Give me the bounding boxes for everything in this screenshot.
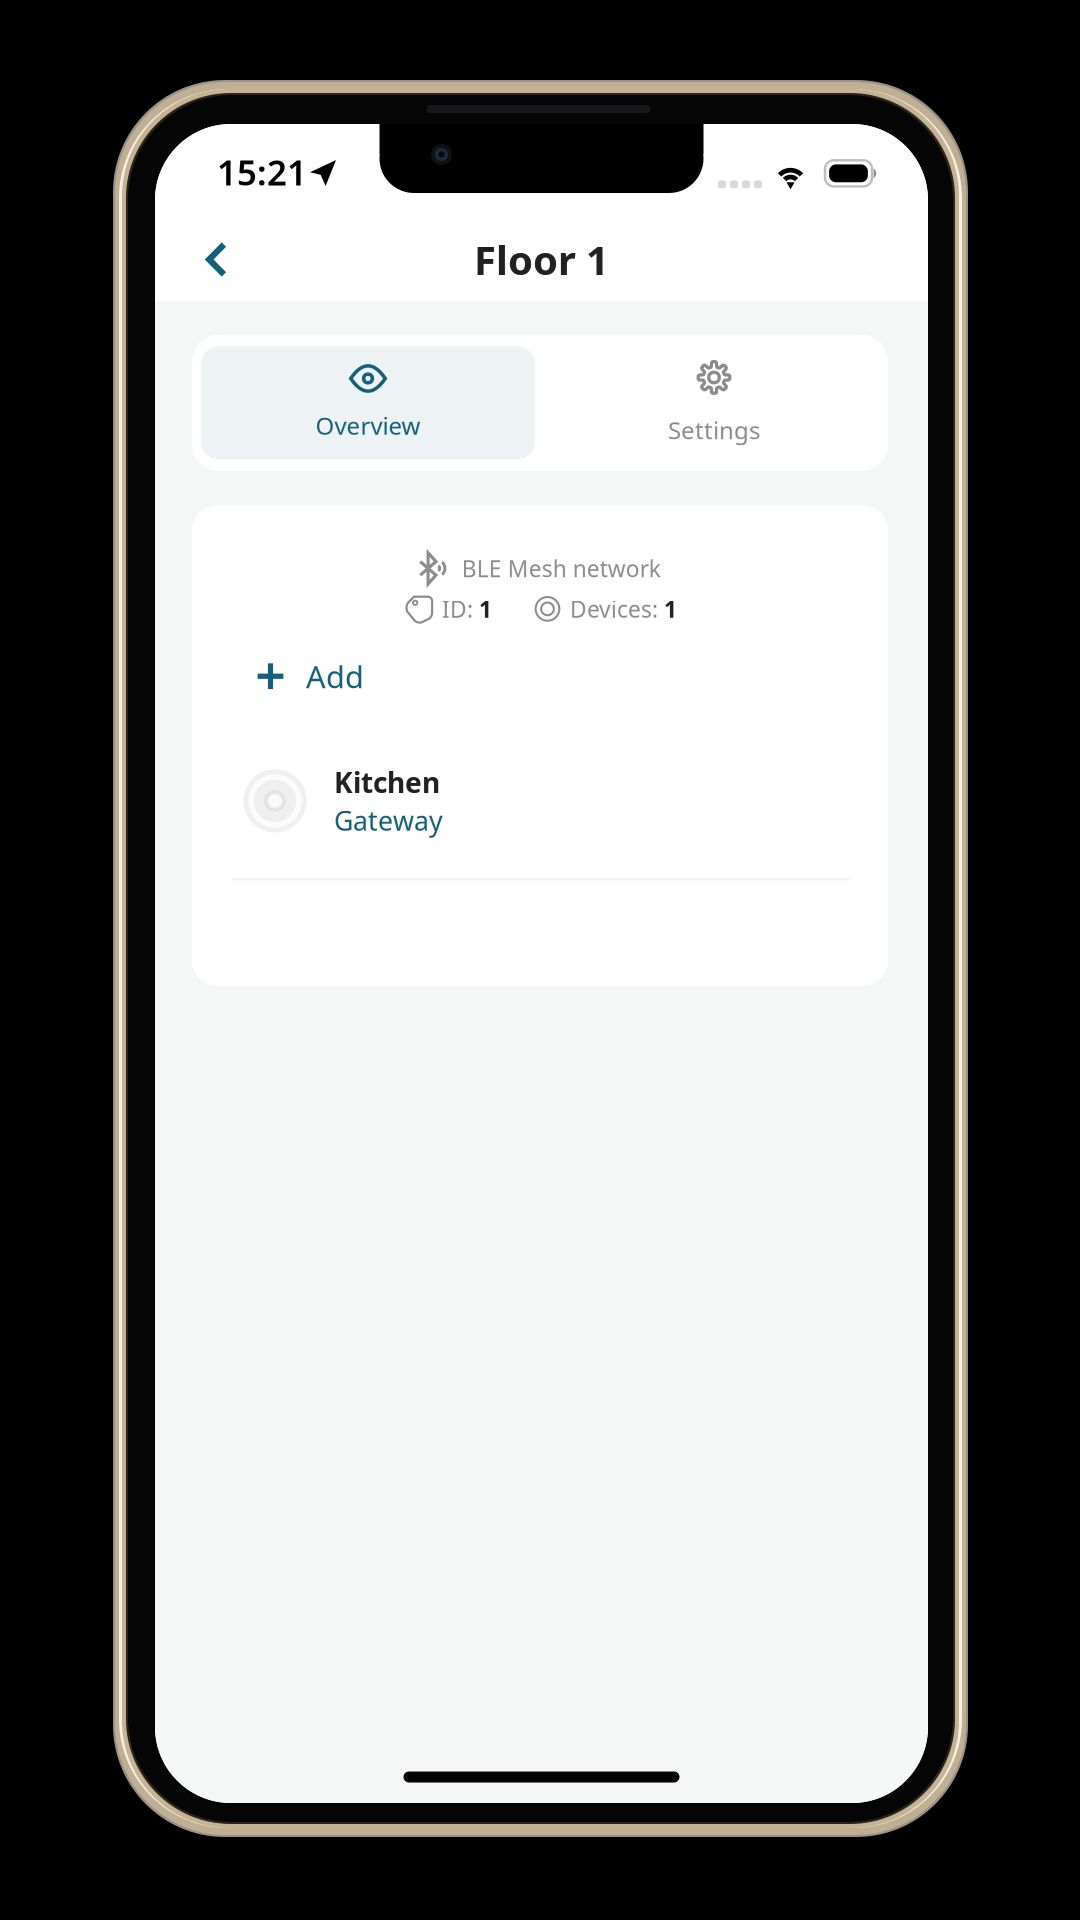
button[interactable]: Overview: [201, 346, 535, 459]
staticText: Overview: [315, 410, 420, 441]
staticText: 1: [664, 594, 677, 624]
staticText: BLE Mesh network: [462, 553, 661, 583]
staticText: 15:21: [217, 149, 307, 195]
button[interactable]: Settings: [547, 342, 881, 464]
staticText: ID:: [442, 594, 479, 624]
staticText: Devices:: [570, 594, 664, 624]
staticText: 1: [479, 594, 492, 624]
staticText: Settings: [668, 414, 760, 446]
staticText: Floor 1: [474, 233, 609, 286]
button[interactable]: Back: [155, 220, 257, 298]
staticText: Kitchen: [334, 764, 440, 801]
button[interactable]: Add: [192, 625, 888, 764]
staticText: Add: [306, 656, 364, 697]
staticText: Gateway: [334, 803, 443, 838]
button[interactable]: Kitchen: [192, 764, 888, 880]
